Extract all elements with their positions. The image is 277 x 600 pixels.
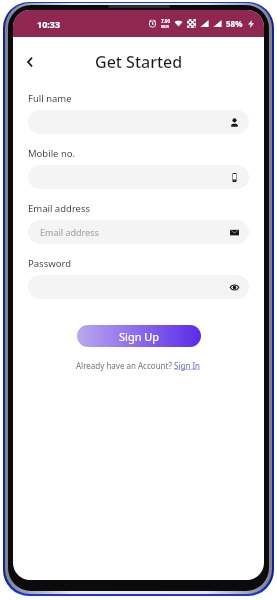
staticText: Sign In	[174, 360, 201, 371]
staticText: Full name	[28, 92, 72, 105]
staticText: Already have an Account?	[76, 360, 174, 371]
staticText: 58%	[226, 18, 243, 29]
staticText: Email address	[28, 202, 91, 215]
button[interactable]	[28, 275, 249, 299]
staticText: 7.00	[161, 18, 170, 24]
button[interactable]: Back	[19, 51, 41, 73]
button[interactable]: Sign Up	[77, 325, 201, 347]
staticText: 10:33	[37, 18, 61, 30]
staticText: Sign Up	[119, 329, 160, 344]
staticText: Get Started	[95, 51, 183, 73]
button[interactable]	[28, 165, 249, 189]
staticText: Email address	[40, 226, 99, 238]
staticText: Password	[28, 257, 71, 270]
button[interactable]: Email address	[28, 220, 249, 244]
button[interactable]: Sign In	[174, 360, 201, 371]
staticText: KB/S	[161, 24, 170, 29]
staticText: Mobile no.	[28, 147, 76, 160]
button[interactable]	[28, 110, 249, 134]
